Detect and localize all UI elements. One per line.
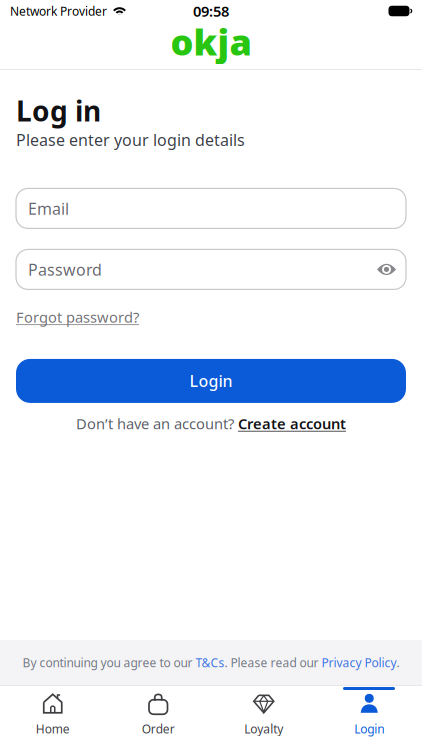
staticText: Please enter your login details bbox=[16, 129, 245, 150]
staticText: Order bbox=[142, 721, 175, 737]
button[interactable]: Forgot password? bbox=[16, 307, 139, 327]
staticText: Forgot password? bbox=[16, 307, 139, 327]
staticText: . Please read our bbox=[224, 654, 321, 670]
staticText: okja bbox=[170, 18, 251, 65]
staticText: 09:58 bbox=[193, 1, 229, 21]
button[interactable]: Loyalty bbox=[211, 692, 316, 737]
staticText: Loyalty bbox=[244, 721, 283, 737]
staticText: By continuing you agree to our bbox=[22, 654, 195, 670]
staticText: Email bbox=[28, 198, 69, 219]
button[interactable]: Privacy Policy bbox=[321, 654, 396, 670]
staticText: Home bbox=[36, 721, 70, 737]
button[interactable]: Create account bbox=[238, 414, 346, 433]
staticText: Create account bbox=[238, 414, 346, 433]
staticText: Log in bbox=[16, 92, 101, 129]
staticText: Network Provider bbox=[10, 3, 107, 19]
staticText: Login bbox=[189, 370, 232, 391]
button[interactable]: Home bbox=[0, 692, 105, 737]
button[interactable]: Login bbox=[16, 359, 406, 403]
staticText: . bbox=[396, 654, 399, 670]
button[interactable]: Email bbox=[16, 188, 406, 228]
staticText: T&Cs bbox=[195, 654, 224, 670]
button[interactable]: Password bbox=[16, 249, 406, 289]
staticText: Don’t have an account? bbox=[76, 414, 238, 433]
staticText: Password bbox=[28, 259, 102, 280]
button[interactable]: Order bbox=[105, 692, 211, 737]
button[interactable]: T&Cs bbox=[195, 654, 224, 670]
button[interactable]: Login bbox=[316, 692, 422, 737]
staticText: Privacy Policy bbox=[321, 654, 396, 670]
staticText: Login bbox=[354, 721, 384, 737]
